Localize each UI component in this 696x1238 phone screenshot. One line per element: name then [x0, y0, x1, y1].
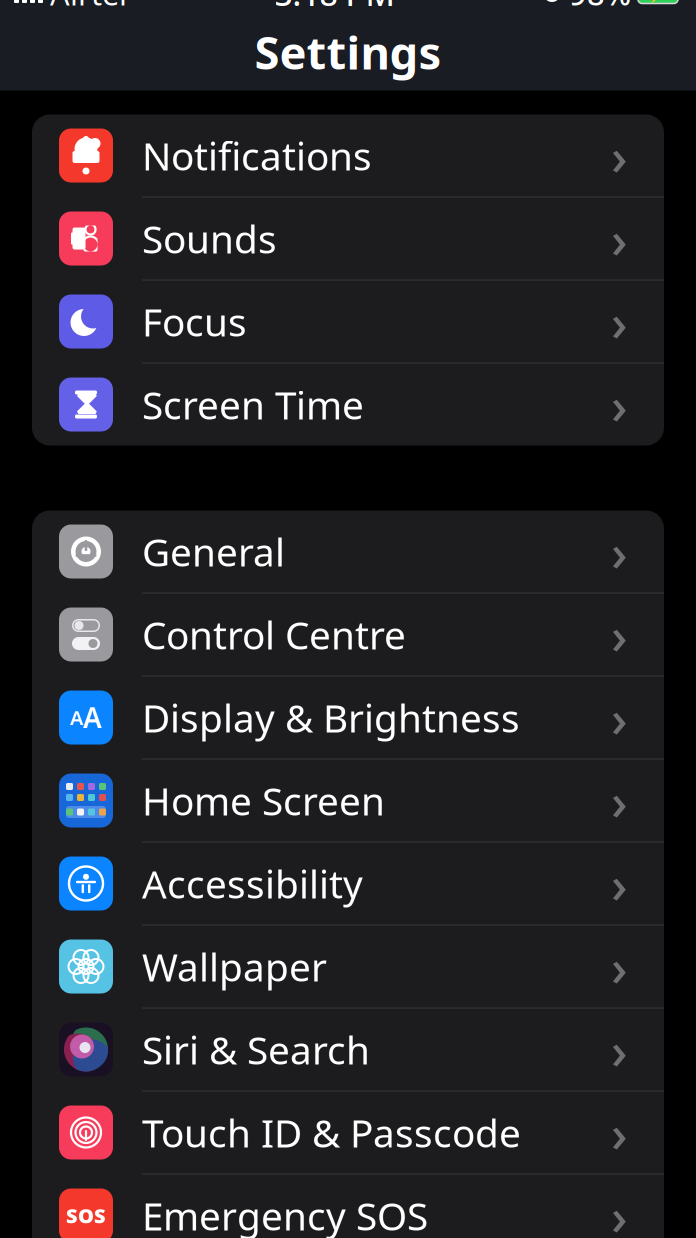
staticText: Settings: [254, 22, 441, 82]
button[interactable]: Focus: [32, 280, 664, 363]
button[interactable]: Siri & Search: [32, 1008, 664, 1091]
staticText: ›: [611, 1182, 628, 1238]
staticText: Siri & Search: [142, 1024, 370, 1075]
staticText: ›: [611, 371, 628, 438]
staticText: ›: [611, 767, 628, 834]
staticText: Display & Brightness: [142, 692, 520, 743]
button[interactable]: Accessibility: [32, 842, 664, 925]
staticText: Home Screen: [142, 775, 385, 826]
staticText: ›: [611, 601, 628, 668]
staticText: Sounds: [142, 213, 277, 264]
staticText: ›: [611, 850, 628, 917]
staticText: ⧗: [75, 389, 97, 420]
staticText: ›: [611, 1016, 628, 1083]
staticText: ›: [611, 684, 628, 751]
staticText: ⚡: [647, 0, 669, 3]
staticText: Wallpaper: [142, 941, 327, 992]
staticText: ›: [611, 122, 628, 189]
staticText: ›: [611, 1099, 628, 1166]
staticText: Notifications: [142, 130, 372, 181]
staticText: Accessibility: [142, 858, 363, 909]
staticText: 3:18 PM: [274, 0, 394, 15]
button[interactable]: General: [32, 510, 664, 593]
button[interactable]: Control Centre: [32, 593, 664, 676]
staticText: ›: [611, 288, 628, 355]
staticText: SOS: [66, 1202, 106, 1229]
staticText: Control Centre: [142, 609, 406, 660]
staticText: A: [70, 704, 83, 731]
staticText: ›: [611, 933, 628, 1000]
button[interactable]: Notifications: [32, 114, 664, 197]
staticText: General: [142, 526, 285, 577]
staticText: Touch ID & Passcode: [142, 1107, 521, 1158]
staticText: Airtel: [50, 0, 127, 14]
button[interactable]: A: [32, 676, 664, 759]
button[interactable]: ⧗: [32, 363, 664, 445]
staticText: 98%: [569, 0, 631, 14]
button[interactable]: Sounds: [32, 197, 664, 280]
button[interactable]: Home Screen: [32, 759, 664, 842]
staticText: Emergency SOS: [142, 1190, 428, 1238]
staticText: Screen Time: [142, 379, 364, 430]
staticText: ›: [611, 518, 628, 585]
staticText: Focus: [142, 296, 247, 347]
button[interactable]: Wallpaper: [32, 925, 664, 1008]
button[interactable]: SOS: [32, 1174, 664, 1238]
staticText: ›: [611, 205, 628, 272]
staticText: A: [83, 699, 102, 736]
button[interactable]: Touch ID & Passcode: [32, 1091, 664, 1174]
